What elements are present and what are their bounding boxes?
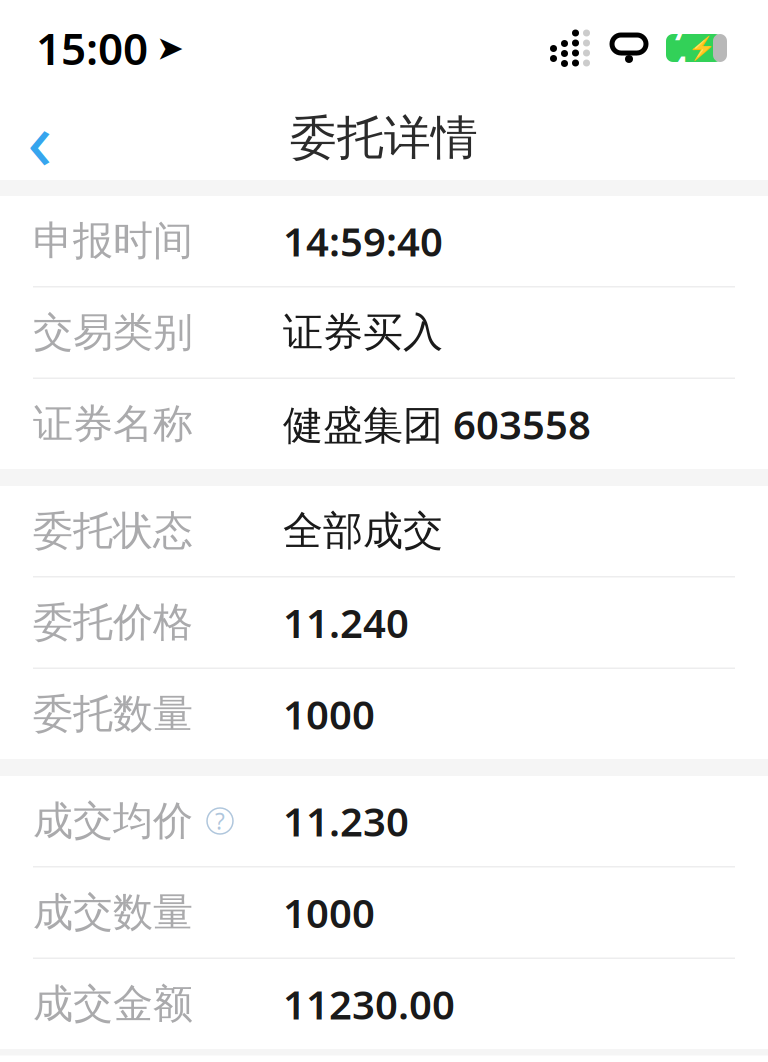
staticText: 11230.00 xyxy=(283,977,455,1030)
staticText: 证券名称 xyxy=(33,399,193,448)
staticText: ⚡ xyxy=(688,35,716,61)
staticText: 证券买入 xyxy=(283,308,443,357)
staticText: 15:00 xyxy=(36,19,148,77)
staticText: 成交均价 xyxy=(33,796,193,845)
staticText: 74 xyxy=(672,11,688,85)
staticText: 14:59:40 xyxy=(283,214,443,267)
staticText: 申报时间 xyxy=(33,216,193,265)
staticText: ‹ xyxy=(27,83,53,193)
staticText: 委托详情 xyxy=(290,109,478,167)
staticText: 全部成交 xyxy=(283,506,443,555)
staticText: 1000 xyxy=(283,886,375,939)
staticText: 1000 xyxy=(283,687,375,740)
staticText: 成交金额 xyxy=(33,979,193,1028)
button[interactable]: 返回 xyxy=(0,96,80,180)
staticText: 交易类别 xyxy=(33,308,193,357)
staticText: ? xyxy=(215,806,225,836)
staticText: 成交数量 xyxy=(33,888,193,937)
staticText: 委托价格 xyxy=(33,598,193,647)
staticText: ➤ xyxy=(156,29,184,67)
staticText: 11.230 xyxy=(283,794,409,847)
staticText: 委托状态 xyxy=(33,506,193,555)
staticText: 委托数量 xyxy=(33,689,193,738)
staticText: 11.240 xyxy=(283,596,409,649)
button[interactable]: 成交均价说明 xyxy=(207,808,233,834)
staticText: 健盛集团 603558 xyxy=(283,397,591,450)
